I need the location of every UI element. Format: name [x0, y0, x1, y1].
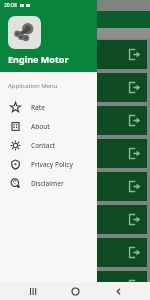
staticText: Contact — [31, 141, 56, 150]
button[interactable]: Cooling System — [3, 139, 147, 168]
button[interactable]: Diesel Engine — [3, 205, 147, 234]
staticText: Privacy Policy — [31, 160, 73, 169]
staticText: Engine Lubrication — [9, 83, 128, 93]
staticText: Cooling System — [9, 149, 128, 159]
staticText: Valve Mechanism — [9, 116, 128, 126]
button[interactable]: Contact — [0, 136, 97, 155]
staticText: 20:08 — [4, 2, 17, 9]
button[interactable]: Fuel System — [3, 172, 147, 201]
button[interactable]: Home — [65, 282, 85, 300]
staticText: Transmission — [9, 281, 128, 291]
staticText: Fuel System — [9, 182, 128, 192]
staticText: Engine Motor — [34, 14, 86, 25]
staticText: Rate — [31, 103, 46, 112]
button[interactable]: Valve Mechanism — [3, 106, 147, 135]
button[interactable]: About — [0, 117, 97, 136]
staticText: Disclaimer — [31, 179, 64, 188]
staticText: Ignition System — [9, 248, 128, 258]
button[interactable]: Disclaimer — [0, 174, 97, 193]
button[interactable]: Ignition System — [3, 238, 147, 267]
button[interactable]: Transmission — [3, 271, 147, 300]
staticText: Engine Motor — [8, 53, 69, 65]
staticText: About — [31, 122, 50, 131]
staticText: Diesel Engine — [9, 215, 128, 225]
button[interactable]: Rate — [0, 98, 97, 117]
staticText: Application Menu — [8, 82, 58, 90]
button[interactable]: Privacy Policy — [0, 155, 97, 174]
staticText: Engine Mechanism — [9, 50, 128, 60]
button[interactable]: Engine Mechanism — [3, 40, 147, 69]
button[interactable]: Back — [108, 282, 128, 300]
button[interactable]: Recents — [23, 282, 43, 300]
button[interactable]: Engine Lubrication — [3, 73, 147, 102]
